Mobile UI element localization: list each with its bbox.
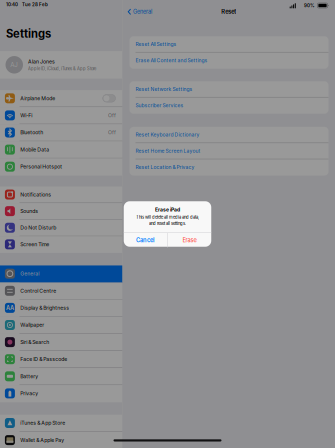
button[interactable]: Cancel xyxy=(124,233,167,247)
button[interactable]: Notifications xyxy=(0,187,122,203)
button[interactable]: iTunes & App Store xyxy=(0,415,122,432)
staticText: Off xyxy=(108,129,116,136)
staticText: Alan Jones xyxy=(28,58,55,65)
staticText: Reset Location & Privacy xyxy=(135,164,194,170)
staticText: Cancel xyxy=(136,237,155,244)
staticText: Airplane Mode xyxy=(20,95,55,101)
button[interactable]: Wallpaper xyxy=(0,317,122,334)
button[interactable]: Reset Keyboard Dictionary xyxy=(129,127,328,143)
staticText: General xyxy=(133,8,152,15)
button[interactable]: Do Not Disturb xyxy=(0,220,122,236)
button[interactable]: Sounds xyxy=(0,203,122,220)
staticText: Reset Network Settings xyxy=(135,86,192,92)
button[interactable]: Erase All Content and Settings xyxy=(129,52,328,69)
button[interactable]: Subscriber Services xyxy=(129,97,328,114)
staticText: Sounds xyxy=(20,208,38,214)
staticText: Erase iPad xyxy=(155,206,180,213)
button[interactable]: Reset Network Settings xyxy=(129,81,328,97)
staticText: Siri & Search xyxy=(20,339,49,345)
button[interactable]: Mobile Data xyxy=(0,141,122,158)
button[interactable]: Bluetooth xyxy=(0,124,122,141)
button[interactable]: AA xyxy=(0,300,122,317)
button[interactable]: Personal Hotspot xyxy=(0,158,122,176)
staticText: iTunes & App Store xyxy=(20,420,65,426)
staticText: 10:40 xyxy=(6,2,18,7)
staticText: Bluetooth xyxy=(20,129,43,136)
staticText: Display & Brightness xyxy=(20,305,69,311)
staticText: AJ xyxy=(10,61,18,68)
button[interactable]: Erase xyxy=(168,233,211,247)
button[interactable]: Battery xyxy=(0,368,122,385)
staticText: Erase All Content and Settings xyxy=(135,57,207,63)
staticText: Reset All Settings xyxy=(135,41,176,47)
button[interactable]: Wallet & Apple Pay xyxy=(0,432,122,448)
staticText: Reset Home Screen Layout xyxy=(135,148,200,154)
staticText: Notifications xyxy=(20,191,51,198)
staticText: Wallpaper xyxy=(20,322,44,328)
staticText: This will delete all media and data, xyxy=(136,215,199,220)
staticText: Personal Hotspot xyxy=(20,164,62,170)
staticText: Wallet & Apple Pay xyxy=(20,437,64,443)
staticText: General xyxy=(20,271,39,277)
button[interactable]: Face ID & Passcode xyxy=(0,351,122,368)
staticText: Screen Time xyxy=(20,241,49,247)
staticText: Settings xyxy=(6,27,51,41)
button[interactable]: AJ xyxy=(0,51,122,79)
staticText: Wi-Fi xyxy=(20,112,32,118)
staticText: Reset xyxy=(221,8,236,15)
staticText: AA xyxy=(6,304,14,311)
staticText: Face ID & Passcode xyxy=(20,356,67,362)
staticText: Off xyxy=(108,112,116,118)
button[interactable]: Airplane Mode xyxy=(0,90,122,107)
button[interactable]: Reset Location & Privacy xyxy=(129,159,328,175)
staticText: Subscriber Services xyxy=(135,102,183,108)
staticText: 90% xyxy=(304,3,315,8)
button[interactable]: Reset Home Screen Layout xyxy=(129,143,328,159)
staticText: Control Centre xyxy=(20,288,56,294)
button[interactable]: Siri & Search xyxy=(0,334,122,351)
staticText: and reset all settings. xyxy=(149,221,186,226)
staticText: Reset Keyboard Dictionary xyxy=(135,132,199,138)
staticText: Tue 28 Feb xyxy=(22,2,48,7)
staticText: Do Not Disturb xyxy=(20,225,56,231)
button[interactable]: Screen Time xyxy=(0,236,122,253)
button[interactable]: Wi-Fi xyxy=(0,107,122,124)
staticText: Privacy xyxy=(20,390,38,396)
button[interactable]: General xyxy=(122,0,158,23)
button[interactable]: Control Centre xyxy=(0,283,122,300)
staticText: Mobile Data xyxy=(20,146,49,153)
staticText: Apple ID, iCloud, iTunes & App Store xyxy=(28,66,96,71)
staticText: Battery xyxy=(20,373,38,379)
staticText: Erase xyxy=(182,237,196,244)
button[interactable]: Reset All Settings xyxy=(129,36,328,52)
button[interactable]: Privacy xyxy=(0,385,122,402)
button[interactable]: General xyxy=(0,265,122,283)
